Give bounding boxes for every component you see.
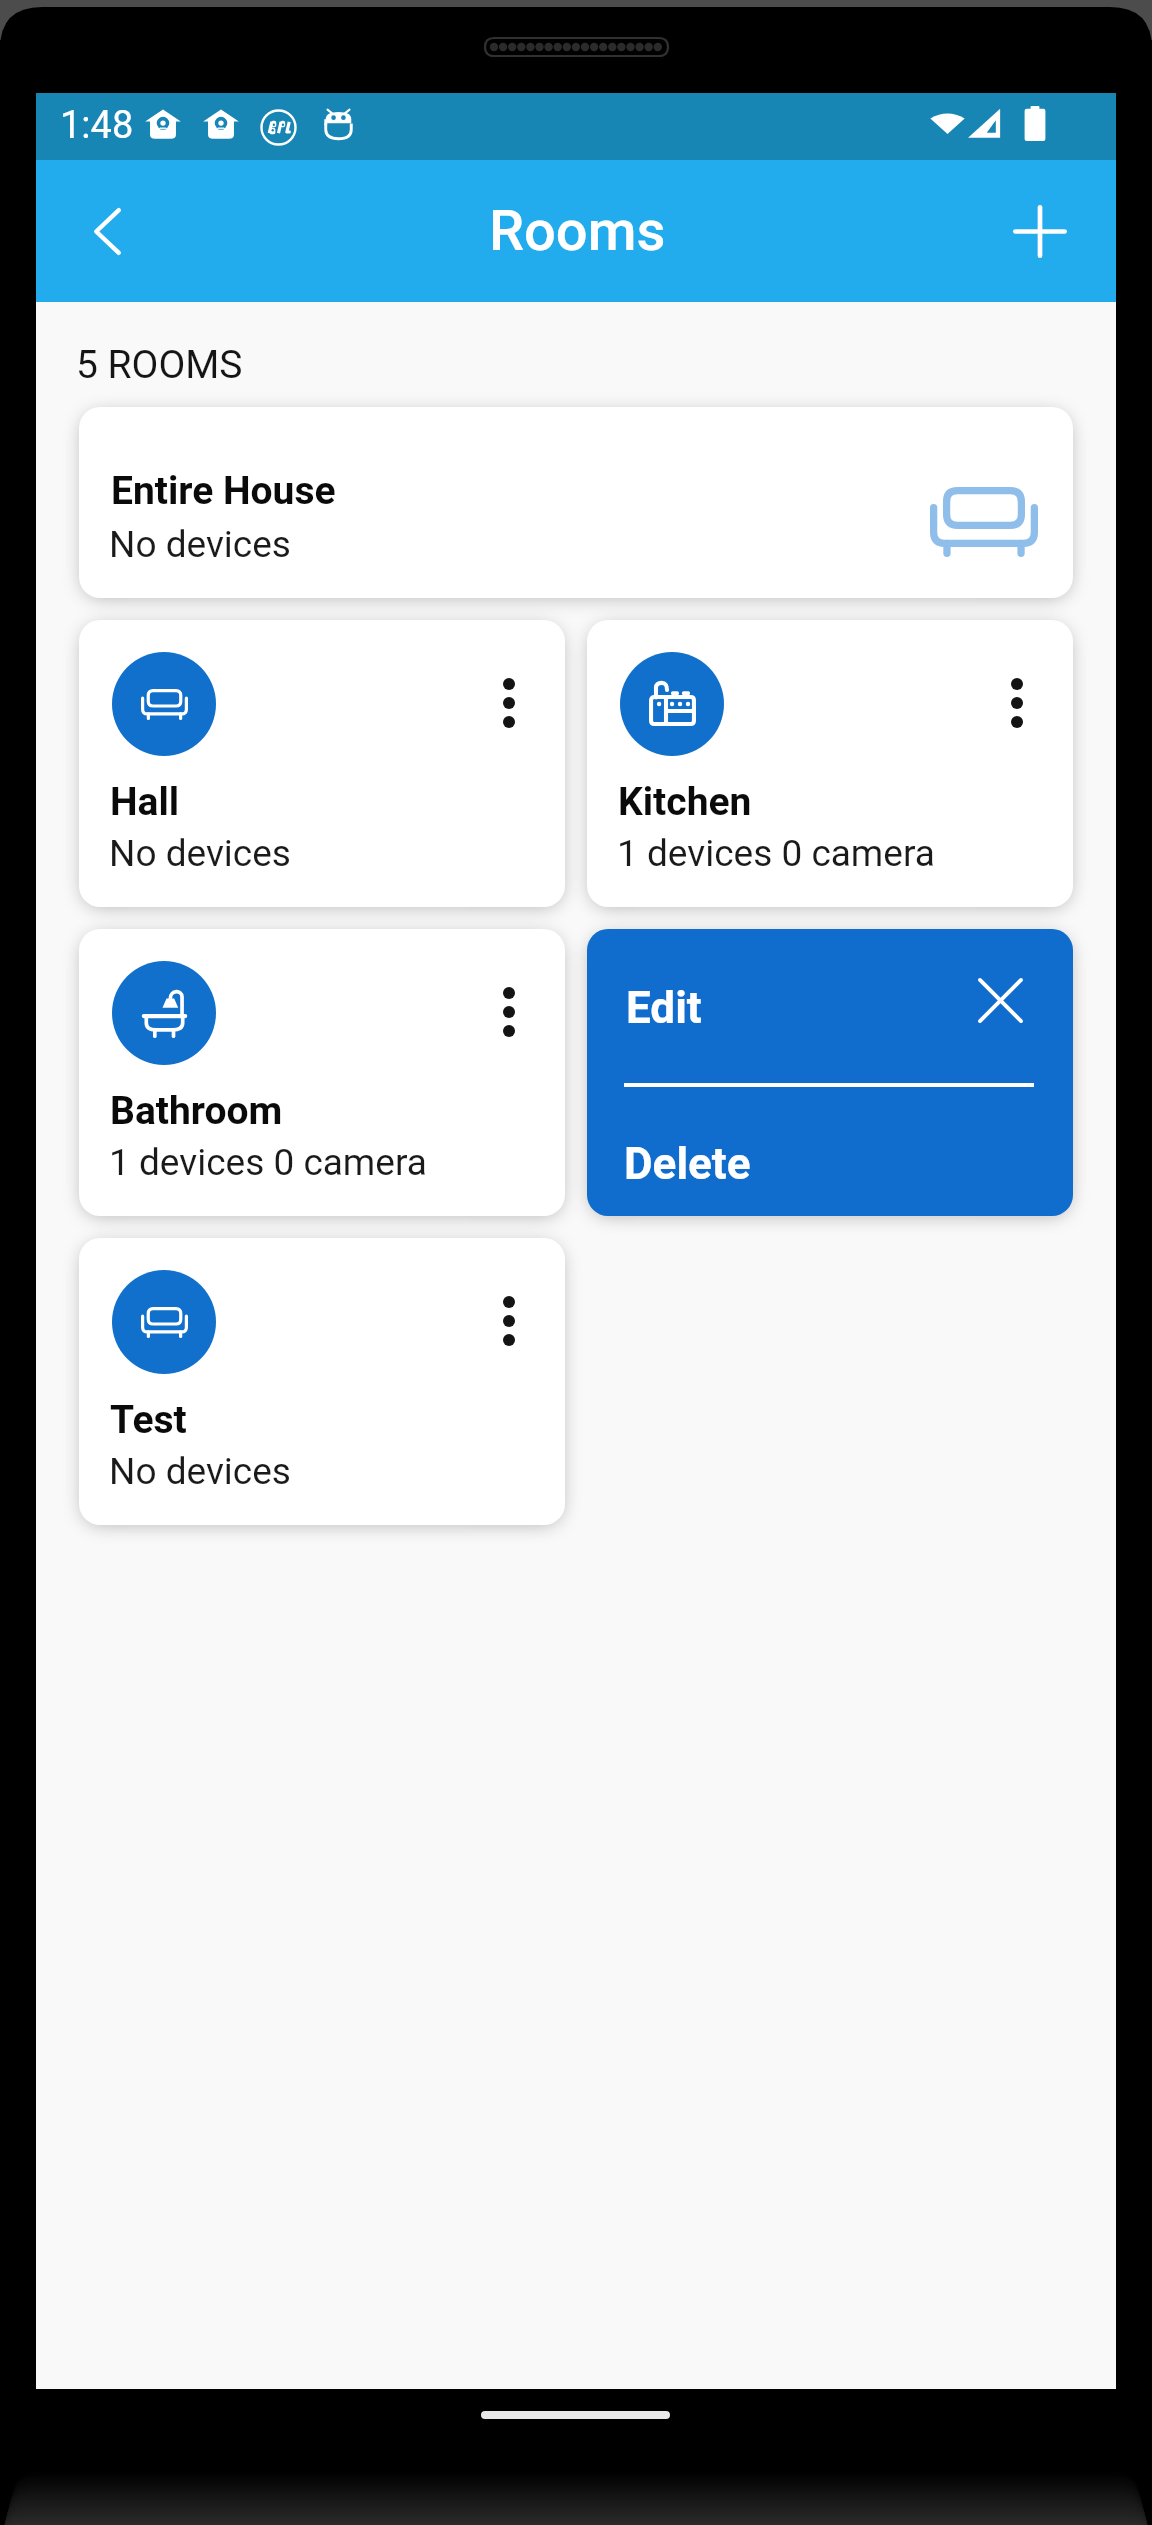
button[interactable]: More options <box>79 929 565 1216</box>
button[interactable]: Close <box>954 954 1047 1047</box>
staticText: No devices <box>109 832 291 875</box>
staticText: Rooms <box>489 198 666 264</box>
staticText: No devices <box>109 1450 291 1493</box>
staticText: 1:48 <box>60 103 134 148</box>
button[interactable]: More options <box>587 620 1073 907</box>
staticText: Test <box>110 1397 187 1443</box>
button[interactable]: More options <box>471 1283 547 1359</box>
staticText: Entire House <box>111 468 336 514</box>
button[interactable]: More options <box>79 620 565 907</box>
staticText: Edit <box>626 982 702 1034</box>
staticText: 1 devices 0 camera <box>109 1141 427 1184</box>
button[interactable]: More options <box>471 665 547 741</box>
button[interactable]: Add room <box>985 160 1095 302</box>
staticText: 1 devices 0 camera <box>617 832 935 875</box>
staticText: Delete <box>624 1138 751 1190</box>
button[interactable]: More options <box>979 665 1055 741</box>
staticText: Kitchen <box>618 779 752 825</box>
button[interactable]: Back <box>53 160 161 302</box>
button[interactable]: Delete <box>624 1138 751 1190</box>
staticText: No devices <box>109 523 291 566</box>
button[interactable]: More options <box>79 1238 565 1525</box>
staticText: Hall <box>110 779 180 825</box>
button[interactable]: Entire House <box>79 407 1073 598</box>
staticText: 5 ROOMS <box>76 342 243 388</box>
button[interactable]: More options <box>471 974 547 1050</box>
staticText: Bathroom <box>110 1088 283 1134</box>
button[interactable]: Edit <box>626 982 702 1034</box>
